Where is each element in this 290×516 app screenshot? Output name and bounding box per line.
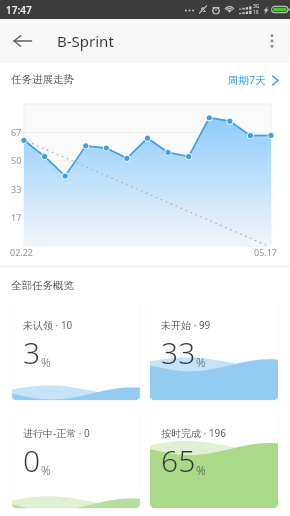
staticText: 周期7天: [228, 73, 266, 87]
staticText: 17: [11, 211, 22, 223]
staticText: 05.17: [254, 246, 278, 258]
staticText: 33: [11, 183, 22, 195]
staticText: 65: [161, 440, 196, 481]
staticText: 按时完成 · 196: [161, 426, 227, 440]
button[interactable]: 未开始 · 99: [150, 303, 278, 400]
button[interactable]: More options: [254, 19, 290, 63]
staticText: 0: [23, 440, 41, 481]
staticText: %: [41, 462, 51, 478]
staticText: 未开始 · 99: [161, 318, 211, 332]
button[interactable]: 未认领 · 10: [12, 303, 140, 400]
staticText: 进行中-正常 · 0: [23, 426, 90, 440]
staticText: 未认领 · 10: [23, 318, 73, 332]
staticText: 3G 1X: [253, 3, 260, 16]
button[interactable]: 周期7天: [228, 68, 279, 92]
staticText: 02.22: [10, 246, 34, 258]
button[interactable]: 进行中-正常 · 0: [12, 411, 140, 508]
button[interactable]: 按时完成 · 196: [150, 411, 278, 508]
staticText: %: [196, 354, 206, 370]
staticText: %: [41, 354, 51, 370]
staticText: 50: [11, 154, 22, 166]
staticText: B-Sprint: [57, 31, 114, 51]
staticText: %: [196, 462, 206, 478]
button[interactable]: Back: [0, 19, 44, 63]
staticText: 任务进展走势: [11, 73, 74, 86]
staticText: 3: [23, 332, 41, 373]
staticText: 33: [161, 332, 196, 373]
staticText: 17:47: [6, 3, 32, 17]
staticText: 67: [11, 126, 22, 138]
staticText: 全部任务概览: [11, 279, 74, 292]
